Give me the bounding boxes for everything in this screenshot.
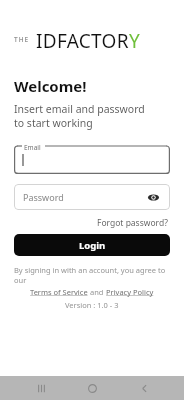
staticText: Y: [129, 28, 140, 54]
button[interactable]: Recent apps: [30, 377, 52, 399]
staticText: Insert email and password to start worki…: [14, 102, 145, 130]
staticText: By signing in with an account, you agree…: [14, 265, 170, 285]
button[interactable]: Terms of Service: [30, 287, 88, 297]
staticText: Version : 1.0 - 3: [65, 300, 119, 310]
button[interactable]: Login: [14, 234, 170, 256]
staticText: Privacy Policy: [106, 287, 154, 297]
staticText: Email: [24, 143, 41, 152]
staticText: Terms of Service: [30, 287, 88, 297]
button[interactable]: Home: [81, 377, 103, 399]
staticText: IDFACTOR: [36, 28, 129, 54]
staticText: Login: [79, 239, 106, 252]
staticText: THE: [14, 35, 30, 44]
button[interactable]: Forgot password?: [95, 216, 170, 230]
button[interactable]: Email: [14, 142, 170, 174]
staticText: Forgot password?: [97, 217, 168, 229]
button[interactable]: Password: [14, 184, 170, 210]
button[interactable]: Show password: [145, 189, 161, 205]
staticText: Password: [23, 191, 145, 203]
staticText: and: [88, 287, 106, 297]
staticText: Welcome!: [14, 76, 87, 96]
button[interactable]: Privacy Policy: [106, 287, 154, 297]
button[interactable]: Back: [133, 377, 155, 399]
